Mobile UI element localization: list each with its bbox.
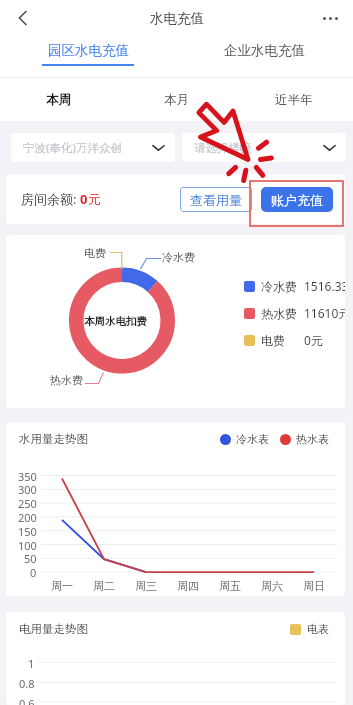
button[interactable]: 账户充值 bbox=[261, 187, 333, 212]
staticText: 水用量走势图 bbox=[19, 432, 88, 446]
staticText: 0 bbox=[80, 190, 88, 208]
staticText: 冷水费 bbox=[162, 250, 195, 264]
staticText: 电费 bbox=[84, 246, 106, 260]
staticText: 300 bbox=[18, 482, 37, 497]
staticText: 园区水电充值 bbox=[48, 42, 129, 59]
staticText: 周二 bbox=[93, 579, 115, 593]
staticText: 宁波(奉化)万洋众创 bbox=[23, 140, 151, 156]
button[interactable]: 本月 bbox=[117, 78, 235, 121]
staticText: 周一 bbox=[51, 579, 73, 593]
staticText: 11610元 bbox=[304, 305, 345, 321]
staticText: 查看用量 bbox=[190, 192, 242, 208]
button[interactable]: 请选择楼幢 bbox=[182, 133, 346, 162]
staticText: 冷水表 bbox=[236, 432, 269, 446]
button[interactable]: 查看用量 bbox=[180, 187, 252, 212]
staticText: 100 bbox=[18, 538, 37, 553]
staticText: 元 bbox=[88, 191, 101, 207]
staticText: 请选择楼幢 bbox=[194, 141, 322, 155]
staticText: 1516.33元 bbox=[304, 278, 345, 294]
staticText: 周三 bbox=[135, 579, 157, 593]
button[interactable]: 近半年 bbox=[235, 78, 353, 121]
staticText: 电表 bbox=[307, 622, 329, 636]
staticText: 0.6 bbox=[19, 696, 35, 705]
staticText: 250 bbox=[18, 496, 37, 511]
staticText: 热水费 bbox=[50, 373, 83, 387]
staticText: 热水费 bbox=[261, 306, 297, 321]
staticText: 水电充值 bbox=[150, 10, 204, 27]
button[interactable]: 企业水电充值 bbox=[176, 36, 353, 78]
staticText: 350 bbox=[18, 469, 37, 484]
staticText: 0 bbox=[30, 565, 37, 580]
staticText: 150 bbox=[18, 524, 37, 539]
staticText: 本周 bbox=[46, 92, 71, 108]
staticText: 电用量走势图 bbox=[19, 622, 88, 636]
staticText: 周四 bbox=[177, 579, 199, 593]
button[interactable]: 园区水电充值 bbox=[0, 36, 176, 78]
button[interactable]: Back bbox=[8, 3, 38, 33]
button[interactable]: More options bbox=[315, 3, 345, 33]
button[interactable]: 宁波(奉化)万洋众创 bbox=[11, 133, 175, 162]
staticText: 房间余额: bbox=[21, 190, 80, 208]
staticText: 200 bbox=[18, 510, 37, 525]
staticText: 1 bbox=[28, 656, 35, 671]
button[interactable]: 本周 bbox=[0, 78, 117, 121]
staticText: 周日 bbox=[303, 579, 325, 593]
staticText: 近半年 bbox=[275, 92, 313, 108]
staticText: 本月 bbox=[164, 92, 189, 108]
staticText: 企业水电充值 bbox=[224, 42, 305, 59]
staticText: 热水表 bbox=[296, 432, 329, 446]
staticText: 电费 bbox=[261, 333, 285, 348]
staticText: 50 bbox=[24, 551, 37, 566]
staticText: 0.8 bbox=[19, 676, 35, 691]
staticText: 周五 bbox=[219, 579, 241, 593]
staticText: 0元 bbox=[304, 332, 323, 348]
staticText: 本周水电扣费 bbox=[84, 315, 147, 328]
staticText: 账户充值 bbox=[271, 192, 323, 208]
staticText: 冷水费 bbox=[261, 279, 297, 294]
staticText: 周六 bbox=[261, 579, 283, 593]
